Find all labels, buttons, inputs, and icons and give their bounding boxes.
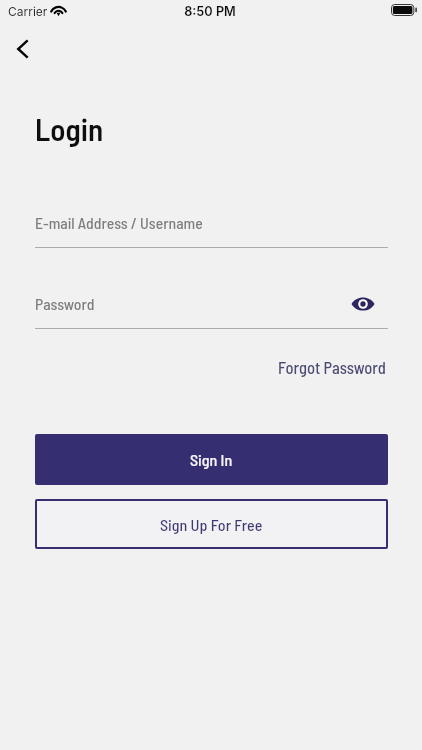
button[interactable]: Password xyxy=(35,292,388,329)
staticText: Forgot Password xyxy=(278,357,386,377)
button[interactable]: Sign Up For Free xyxy=(35,499,388,549)
button[interactable]: Forgot Password xyxy=(278,357,386,377)
button[interactable]: Show password xyxy=(345,291,381,316)
staticText: 8:50 PM xyxy=(184,4,236,19)
staticText: Login xyxy=(35,110,104,147)
staticText: Sign In xyxy=(190,450,233,469)
staticText: E-mail Address / Username xyxy=(35,213,203,232)
button[interactable]: Back xyxy=(2,29,42,69)
staticText: Carrier xyxy=(8,4,48,19)
staticText: Password xyxy=(35,294,95,313)
button[interactable]: Sign In xyxy=(35,434,388,485)
button[interactable]: E-mail Address / Username xyxy=(35,211,388,248)
staticText: Sign Up For Free xyxy=(160,515,263,534)
